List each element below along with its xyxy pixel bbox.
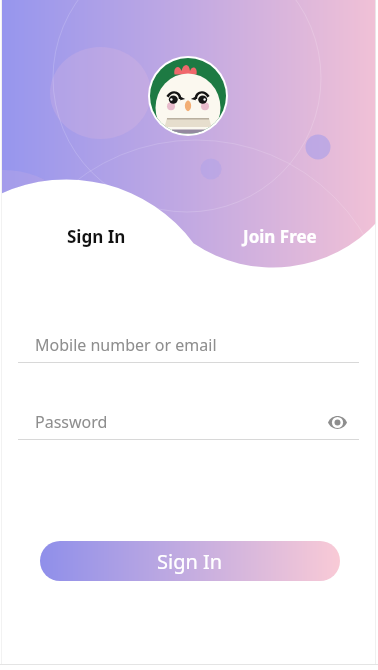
staticText: Password [35, 411, 108, 433]
button[interactable]: Join Free [189, 213, 378, 259]
staticText: Join Free [243, 225, 317, 248]
button[interactable]: Show password [320, 405, 354, 439]
staticText: Mobile number or email [35, 334, 217, 356]
button[interactable]: Sign In [40, 541, 340, 581]
staticText: Sign In [67, 225, 126, 248]
button[interactable]: Sign In [0, 213, 189, 259]
staticText: Sign In [157, 548, 223, 575]
